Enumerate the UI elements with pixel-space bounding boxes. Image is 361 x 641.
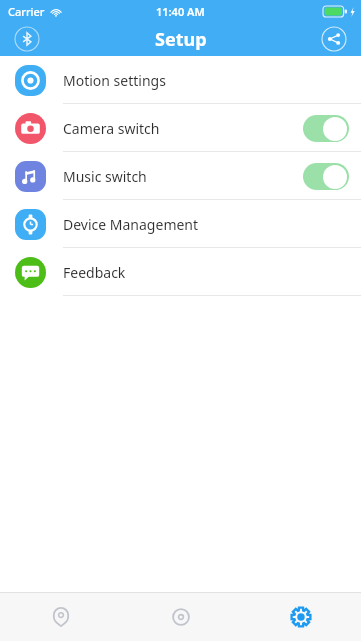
button[interactable]: Camera switch	[0, 104, 361, 152]
button[interactable]: Camera switch toggle	[303, 115, 349, 142]
button[interactable]: Location	[0, 592, 121, 641]
button[interactable]: Settings	[241, 592, 361, 641]
staticText: Motion settings	[63, 71, 166, 90]
staticText: Device Management	[63, 215, 199, 234]
staticText: Carrier	[8, 4, 45, 19]
staticText: Music switch	[63, 167, 147, 186]
staticText: Setup	[155, 27, 207, 52]
button[interactable]: Bluetooth	[14, 26, 40, 52]
button[interactable]: Device Management	[0, 200, 361, 248]
button[interactable]: Motion settings	[0, 56, 361, 104]
button[interactable]: Feedback	[0, 248, 361, 296]
button[interactable]: Device	[121, 592, 241, 641]
button[interactable]: Music switch toggle	[303, 163, 349, 190]
staticText: Camera switch	[63, 119, 160, 138]
button[interactable]: Share	[321, 26, 347, 52]
staticText: 11:40 AM	[156, 4, 205, 19]
button[interactable]: Music switch	[0, 152, 361, 200]
staticText: Feedback	[63, 263, 126, 282]
